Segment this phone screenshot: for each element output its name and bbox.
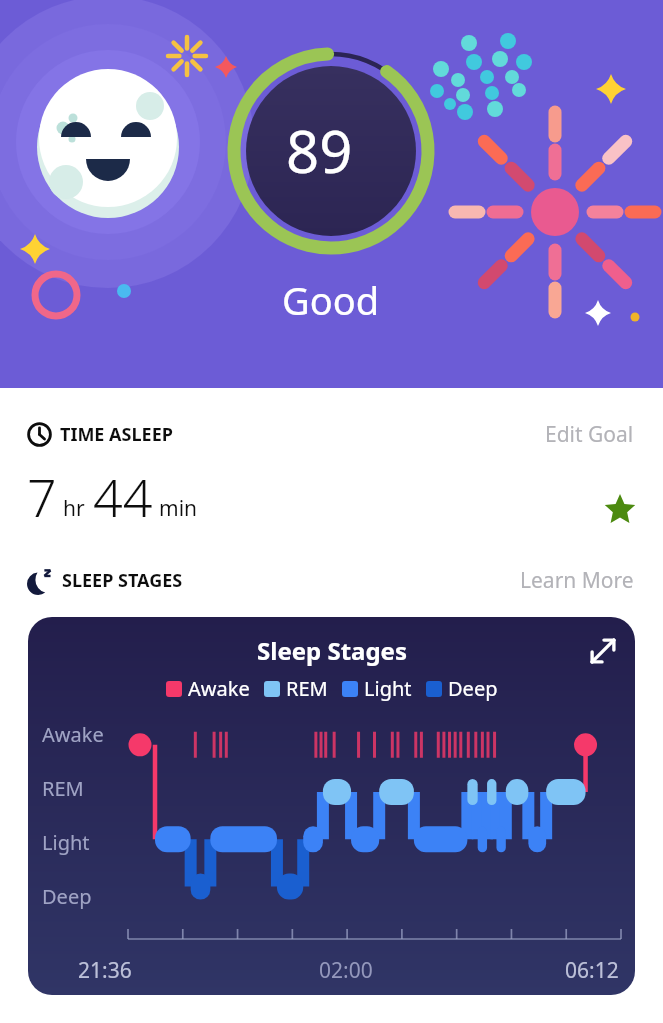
button[interactable]: Edit Goal [543, 416, 636, 453]
staticText: 02:00 [319, 956, 373, 985]
staticText: REM [286, 675, 328, 702]
staticText: 06:12 [565, 956, 619, 985]
staticText: SLEEP STAGES [62, 568, 183, 593]
staticText: Light [364, 675, 412, 702]
staticText: REM [42, 775, 84, 802]
staticText: TIME ASLEEP [60, 422, 173, 447]
staticText: Awake [42, 721, 104, 748]
staticText: Light [42, 829, 90, 856]
staticText: 21:36 [78, 956, 132, 985]
button[interactable]: Learn More [518, 562, 636, 599]
staticText: 44 [93, 461, 153, 532]
staticText: Deep [42, 883, 92, 910]
other: Sleep goal achieved [604, 494, 636, 526]
staticText: 89 [286, 111, 353, 190]
staticText: Deep [448, 675, 498, 702]
staticText: Learn More [520, 566, 634, 595]
staticText: Edit Goal [545, 420, 634, 449]
staticText: hr [63, 494, 85, 523]
staticText: 7 [27, 461, 57, 532]
staticText: min [159, 494, 198, 523]
button[interactable]: Expand chart [587, 635, 619, 667]
staticText: Sleep Stages [257, 634, 407, 667]
button[interactable]: Sleep Stages [28, 617, 635, 995]
staticText: Awake [188, 675, 250, 702]
staticText: Good [282, 274, 380, 326]
